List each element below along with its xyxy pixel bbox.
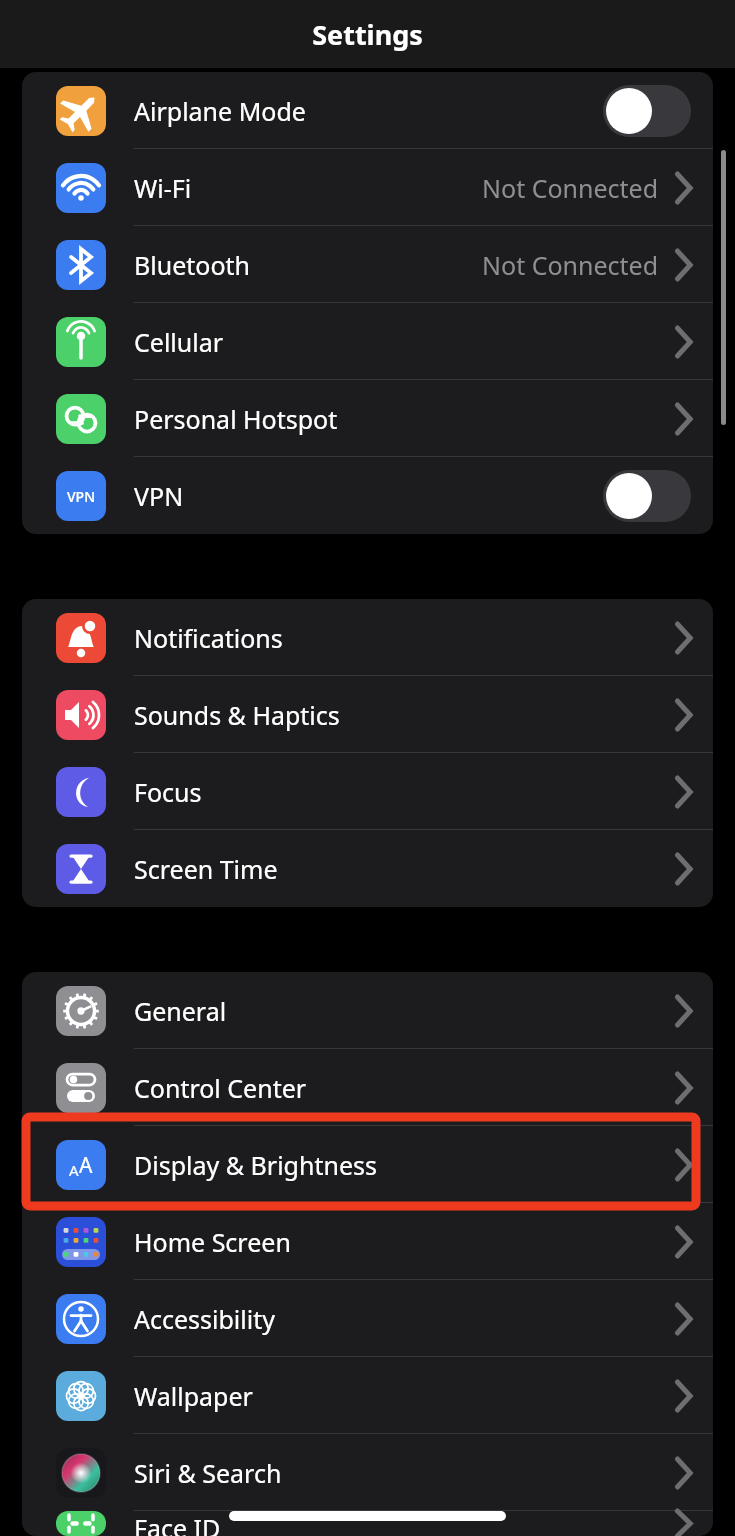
staticText: Wallpaper (134, 1379, 253, 1413)
staticText: Siri & Search (134, 1456, 282, 1490)
staticText: VPN (134, 479, 184, 513)
button[interactable]: Personal Hotspot (22, 380, 713, 457)
button[interactable]: Siri & Search (22, 1434, 713, 1511)
button[interactable]: Wallpaper (22, 1357, 713, 1434)
staticText: Home Screen (134, 1225, 291, 1259)
button[interactable]: Cellular (22, 303, 713, 380)
staticText: Face ID (134, 1511, 221, 1536)
button[interactable]: Face ID (22, 1511, 713, 1536)
button[interactable]: Wi-Fi (22, 149, 713, 226)
staticText: Settings (312, 16, 423, 53)
staticText: A (79, 1151, 93, 1180)
staticText: Sounds & Haptics (134, 698, 340, 732)
button[interactable]: A (22, 1126, 713, 1203)
staticText: Focus (134, 775, 202, 809)
staticText: Not Connected (482, 171, 659, 205)
staticText: Control Center (134, 1071, 307, 1105)
staticText: Notifications (134, 621, 283, 655)
staticText: A (69, 1160, 79, 1180)
staticText: VPN (67, 487, 96, 506)
staticText: Cellular (134, 325, 224, 359)
staticText: Display & Brightness (134, 1148, 377, 1182)
button[interactable]: Bluetooth (22, 226, 713, 303)
button[interactable]: Home Screen (22, 1203, 713, 1280)
button[interactable]: General (22, 972, 713, 1049)
staticText: Screen Time (134, 852, 278, 886)
button[interactable]: Sounds & Haptics (22, 676, 713, 753)
staticText: General (134, 994, 227, 1028)
button[interactable]: Notifications (22, 599, 713, 676)
button[interactable]: Focus (22, 753, 713, 830)
button[interactable]: VPN (22, 457, 713, 534)
staticText: Accessibility (134, 1302, 275, 1336)
staticText: Wi-Fi (134, 171, 192, 205)
staticText: Bluetooth (134, 248, 251, 282)
staticText: Airplane Mode (134, 94, 306, 128)
staticText: Personal Hotspot (134, 402, 338, 436)
button[interactable]: Airplane Mode (22, 72, 713, 149)
button[interactable]: Accessibility (22, 1280, 713, 1357)
button[interactable]: Screen Time (22, 830, 713, 907)
staticText: Not Connected (482, 248, 659, 282)
button[interactable]: Control Center (22, 1049, 713, 1126)
